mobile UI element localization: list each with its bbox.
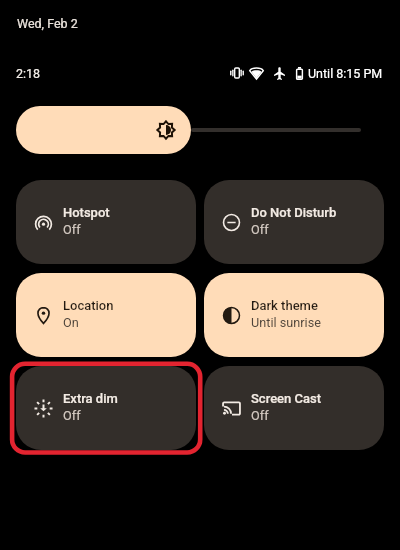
- staticText: Dark theme: [251, 298, 318, 313]
- staticText: Screen Cast: [251, 391, 322, 406]
- button[interactable]: Hotspot: [16, 180, 196, 264]
- staticText: On: [63, 315, 79, 330]
- staticText: Extra dim: [63, 391, 118, 406]
- button[interactable]: Extra dim: [16, 366, 196, 450]
- staticText: Location: [63, 298, 114, 313]
- staticText: Off: [251, 222, 269, 237]
- staticText: Off: [63, 222, 81, 237]
- staticText: Off: [63, 408, 81, 423]
- staticText: Hotspot: [63, 205, 110, 220]
- staticText: Until 8:15 PM: [308, 66, 383, 81]
- button[interactable]: Brightness: [16, 106, 191, 154]
- staticText: Off: [251, 408, 269, 423]
- button[interactable]: Do Not Disturb: [204, 180, 384, 264]
- staticText: 2:18: [16, 66, 41, 81]
- button[interactable]: Screen Cast: [204, 366, 384, 450]
- button[interactable]: Dark theme: [204, 273, 384, 357]
- button[interactable]: Location: [16, 273, 196, 357]
- staticText: Wed, Feb 2: [17, 16, 78, 31]
- staticText: Do Not Disturb: [251, 205, 337, 220]
- staticText: Until sunrise: [251, 315, 321, 330]
